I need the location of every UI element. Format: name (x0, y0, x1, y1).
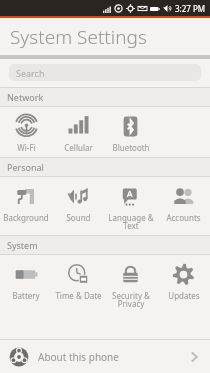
staticText: Bluetooth (112, 142, 150, 153)
button[interactable]: Background (0, 183, 52, 224)
staticText: Updates (168, 290, 200, 301)
staticText: Background (3, 212, 49, 223)
button[interactable]: About this phone (0, 340, 210, 373)
button[interactable]: Language & Text (104, 183, 157, 232)
staticText: Time & Date (55, 290, 102, 301)
staticText: Personal (7, 161, 44, 173)
staticText: System (7, 239, 38, 251)
button[interactable]: Search (9, 64, 201, 81)
staticText: Accounts (166, 212, 201, 223)
button[interactable]: Updates (157, 261, 210, 302)
button[interactable]: Bluetooth (104, 113, 157, 154)
staticText: Security & Privacy (112, 290, 150, 309)
staticText: Cellular (64, 142, 93, 153)
button[interactable]: Accounts (157, 183, 210, 224)
staticText: About this phone (38, 350, 119, 364)
staticText: Wi-Fi (17, 142, 36, 153)
button[interactable]: Wi-Fi (0, 113, 52, 154)
button[interactable]: Battery (0, 261, 52, 302)
staticText: Network (7, 91, 44, 103)
button[interactable]: Sound (52, 183, 104, 224)
staticText: Battery (12, 290, 40, 301)
button[interactable]: Security & Privacy (104, 261, 157, 310)
button[interactable]: Time & Date (52, 261, 104, 302)
staticText: System Settings (10, 24, 147, 50)
staticText: Language & Text (108, 212, 154, 231)
staticText: Search (16, 67, 45, 79)
staticText: Sound (66, 212, 91, 223)
other: Open About this phone (187, 350, 201, 364)
button[interactable]: Cellular (52, 113, 104, 154)
staticText: 3:27 PM (175, 3, 206, 14)
